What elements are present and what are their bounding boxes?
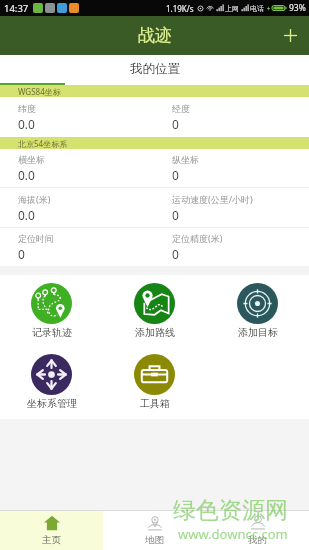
staticText: 经度: [172, 103, 190, 114]
staticText: 纬度: [18, 103, 36, 114]
staticText: 0: [172, 116, 179, 132]
button[interactable]: 添加路线: [103, 283, 206, 339]
staticText: 海拔(米): [18, 193, 51, 205]
button[interactable]: 我的位置: [0, 55, 309, 83]
staticText: 我的位置: [130, 61, 180, 77]
staticText: 运动速度(公里/小时): [172, 193, 253, 205]
staticText: 0.0: [18, 207, 35, 223]
button[interactable]: 我的: [206, 511, 309, 550]
staticText: 纵坐标: [172, 154, 199, 165]
button[interactable]: 主页: [0, 511, 103, 550]
staticText: 0.0: [18, 116, 35, 132]
staticText: www.downcc.com: [178, 525, 288, 543]
staticText: 定位时间: [18, 233, 54, 244]
staticText: 坐标系管理: [27, 397, 77, 410]
staticText: 地图: [145, 534, 164, 546]
staticText: 定位精度(米): [172, 232, 223, 244]
button[interactable]: 坐标系管理: [0, 354, 103, 410]
staticText: 工具箱: [140, 397, 170, 410]
button[interactable]: 地图: [103, 511, 206, 550]
staticText: 14:37: [4, 2, 29, 15]
button[interactable]: 工具箱: [103, 354, 206, 410]
staticText: 0: [172, 167, 179, 183]
staticText: 1.19K/s: [166, 3, 194, 14]
staticText: 北京54坐标系: [18, 138, 68, 149]
staticText: 添加路线: [135, 326, 175, 339]
staticText: 0.0: [18, 167, 35, 183]
staticText: 战迹: [138, 25, 172, 46]
staticText: 绿色资源网: [173, 496, 288, 525]
staticText: WGS84坐标: [18, 86, 61, 97]
button[interactable]: Add: [271, 16, 309, 55]
staticText: 添加目标: [238, 326, 278, 339]
staticText: 记录轨迹: [32, 326, 72, 339]
button[interactable]: 添加目标: [206, 283, 309, 339]
staticText: 0: [18, 246, 25, 262]
staticText: 0: [172, 246, 179, 262]
staticText: 主页: [42, 534, 61, 546]
staticText: 上网: [225, 4, 239, 13]
staticText: 横坐标: [18, 154, 45, 165]
button[interactable]: 记录轨迹: [0, 283, 103, 339]
staticText: 电话: [250, 4, 264, 13]
staticText: 我的: [248, 534, 267, 546]
staticText: 93%: [289, 2, 306, 14]
staticText: 0: [172, 207, 179, 223]
